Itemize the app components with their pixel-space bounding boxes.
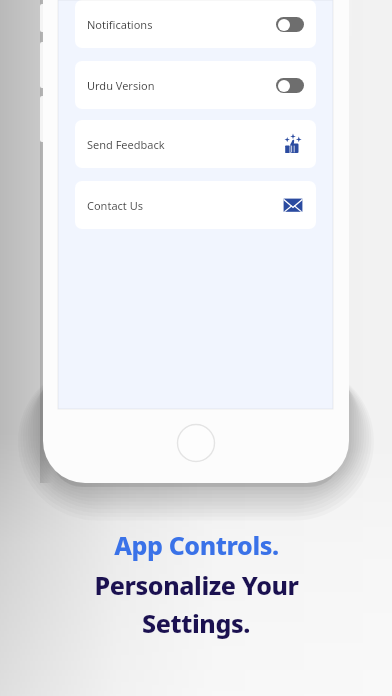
staticText: App Controls.: [114, 528, 279, 562]
staticText: Send Feedback: [87, 137, 282, 152]
staticText: Settings.: [142, 606, 250, 640]
button[interactable]: Contact Us: [282, 194, 304, 216]
staticText: Notifications: [87, 17, 276, 32]
button[interactable]: Toggle: [276, 78, 304, 93]
button[interactable]: Send Feedback: [282, 133, 304, 155]
staticText: Urdu Version: [87, 78, 276, 93]
staticText: Contact Us: [87, 198, 282, 213]
button[interactable]: Urdu Version: [75, 61, 316, 109]
staticText: Personalize Your: [94, 568, 299, 602]
button[interactable]: Toggle: [276, 17, 304, 32]
button[interactable]: Notifications: [75, 0, 316, 48]
button[interactable]: Contact Us: [75, 181, 316, 229]
button[interactable]: Send Feedback: [75, 120, 316, 168]
button[interactable]: Home: [177, 424, 215, 462]
